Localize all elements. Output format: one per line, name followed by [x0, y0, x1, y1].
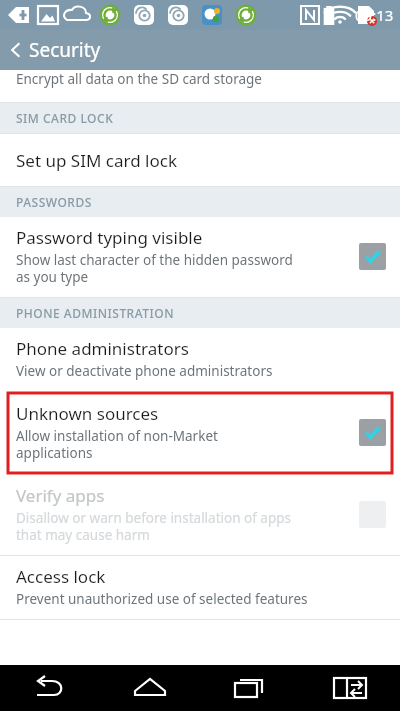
staticText: 09:13	[355, 5, 394, 25]
button[interactable]: Enabled, checked	[359, 243, 386, 270]
staticText: Unknown sources	[16, 402, 159, 425]
staticText: Access lock	[16, 565, 106, 588]
button[interactable]: Verify apps	[0, 475, 400, 555]
staticText: Allow installation of non-Market applica…	[16, 427, 218, 462]
staticText: Security	[29, 37, 101, 63]
button[interactable]: Enabled, checked	[359, 419, 386, 446]
staticText: SIM CARD LOCK	[16, 110, 114, 126]
button[interactable]: Unknown sources	[8, 393, 392, 473]
button[interactable]: Home	[100, 665, 200, 711]
staticText: Phone administrators	[16, 337, 189, 360]
button[interactable]: Encrypt all data on the SD card storage	[0, 70, 400, 90]
staticText: Set up SIM card lock	[16, 149, 177, 172]
button[interactable]: Access lock	[0, 556, 400, 619]
staticText: Disallow or warn before installation of …	[16, 509, 292, 544]
staticText: Prevent unauthorized use of selected fea…	[16, 590, 308, 608]
staticText: Show last character of the hidden passwo…	[16, 251, 293, 286]
button[interactable]: Dual window	[300, 665, 400, 711]
button[interactable]: Back	[0, 665, 100, 711]
staticText: Verify apps	[16, 484, 105, 507]
button[interactable]: Phone administrators	[0, 328, 400, 391]
button[interactable]: Set up SIM card lock	[0, 134, 400, 186]
staticText: View or deactivate phone administrators	[16, 362, 273, 380]
staticText: Encrypt all data on the SD card storage	[16, 70, 262, 88]
staticText: PHONE ADMINISTRATION	[16, 305, 174, 321]
button[interactable]: Password typing visible	[0, 217, 400, 297]
button[interactable]: Navigate up	[4, 33, 106, 67]
staticText: PASSWORDS	[16, 194, 92, 210]
button[interactable]: Recent apps	[200, 665, 300, 711]
staticText: Password typing visible	[16, 226, 203, 249]
